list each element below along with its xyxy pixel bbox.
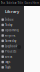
button[interactable]: Upcoming xyxy=(0,28,24,33)
button[interactable]: Compose xyxy=(17,45,21,49)
button[interactable]: Tags xyxy=(0,59,24,65)
button[interactable]: Anytime xyxy=(0,33,24,38)
staticText: Trash xyxy=(5,66,11,69)
button[interactable]: Logbook xyxy=(0,43,24,49)
staticText: The Sidebar Title Goes Here xyxy=(0,1,39,5)
button[interactable]: Inbox xyxy=(0,17,24,22)
staticText: Areas xyxy=(5,55,12,58)
staticText: Anytime xyxy=(5,34,16,37)
button[interactable]: Areas xyxy=(0,54,24,59)
staticText: Projects xyxy=(5,50,16,53)
button[interactable]: Projects xyxy=(0,49,24,54)
staticText: 9:41 xyxy=(3,2,6,4)
staticText: Today xyxy=(5,23,12,27)
button[interactable]: Trash xyxy=(0,65,24,70)
staticText: Tags xyxy=(5,60,10,64)
button[interactable]: Today xyxy=(0,22,24,28)
button[interactable]: Someday xyxy=(0,38,24,43)
staticText: Inbox xyxy=(5,18,13,21)
staticText: Library xyxy=(5,9,19,14)
staticText: Upcoming xyxy=(5,28,19,32)
staticText: Logbook xyxy=(5,44,17,48)
staticText: Someday xyxy=(5,39,16,43)
